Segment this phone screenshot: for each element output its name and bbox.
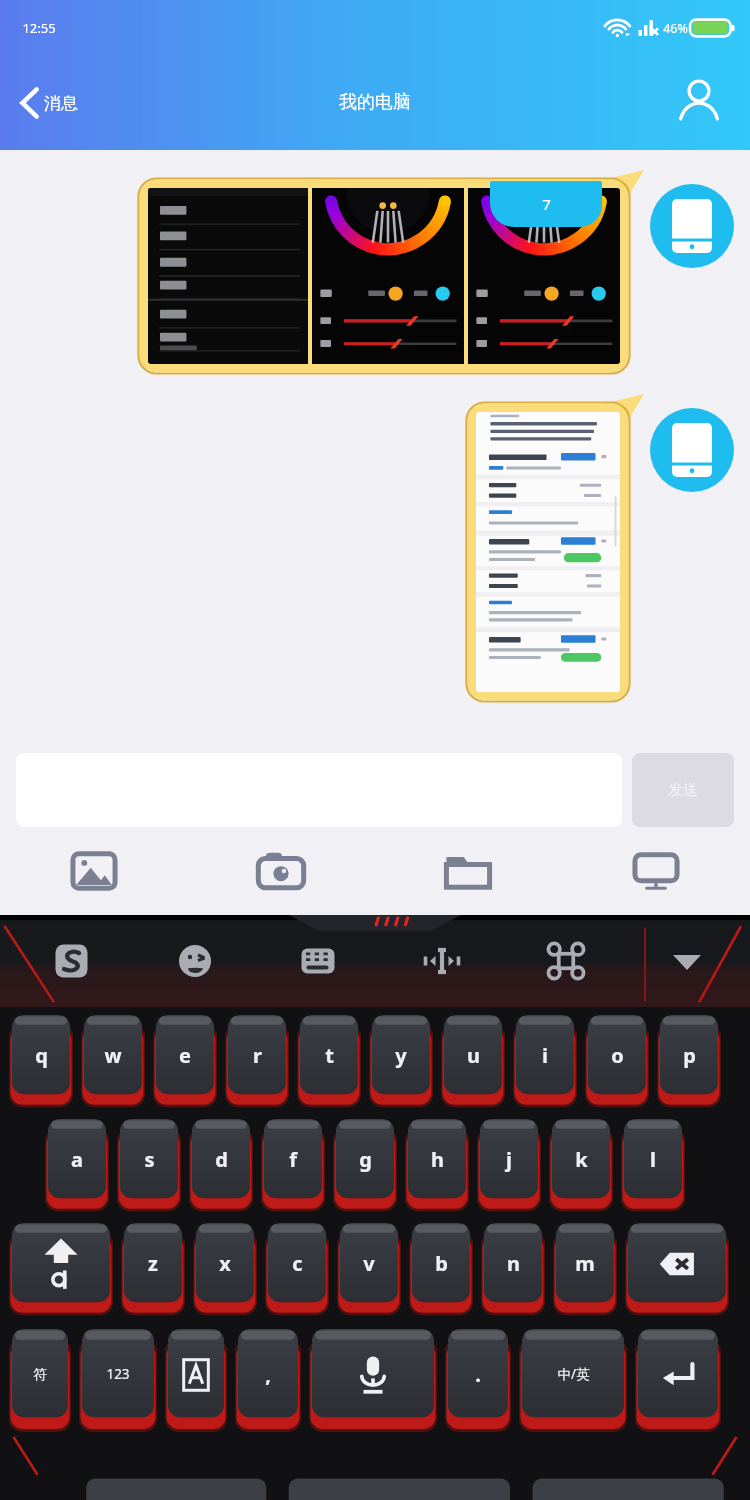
button[interactable]: Device avatar <box>650 408 734 492</box>
button[interactable]: z <box>121 1223 185 1311</box>
staticText: o <box>611 1042 624 1069</box>
button[interactable]: k <box>549 1119 613 1207</box>
button[interactable]: h <box>405 1119 469 1207</box>
button[interactable]: Switch input mode <box>165 1329 227 1427</box>
button[interactable]: l <box>621 1119 685 1207</box>
button[interactable]: 123 <box>79 1329 157 1427</box>
button[interactable] <box>466 402 630 702</box>
staticText: , <box>265 1361 271 1388</box>
button[interactable]: 符 <box>9 1329 71 1427</box>
button[interactable]: i <box>513 1015 577 1103</box>
button[interactable]: Files <box>374 827 562 915</box>
button[interactable]: Backspace <box>625 1223 729 1311</box>
button[interactable]: t <box>297 1015 361 1103</box>
staticText: s <box>144 1146 155 1173</box>
staticText: 我的电脑 <box>339 91 411 114</box>
staticText: m <box>575 1250 595 1277</box>
button[interactable]: Camera <box>187 827 374 915</box>
staticText: h <box>431 1146 444 1173</box>
button[interactable]: Contact profile <box>666 70 732 136</box>
staticText: 123 <box>106 1365 130 1383</box>
staticText: 发送 <box>668 781 698 800</box>
staticText: t <box>325 1042 334 1069</box>
staticText: z <box>148 1250 158 1277</box>
staticText: c <box>292 1250 303 1277</box>
staticText: d <box>215 1146 228 1173</box>
button[interactable]: r <box>225 1015 289 1103</box>
staticText: 46% <box>663 20 688 37</box>
staticText: y <box>395 1042 407 1069</box>
staticText: n <box>507 1250 520 1277</box>
button[interactable]: w <box>81 1015 145 1103</box>
button[interactable]: Emoji <box>133 915 256 1007</box>
button[interactable]: y <box>369 1015 433 1103</box>
button[interactable]: . <box>445 1329 511 1427</box>
button[interactable]: s <box>117 1119 181 1207</box>
button[interactable]: Gallery <box>0 827 187 915</box>
staticText: a <box>71 1146 83 1173</box>
staticText: . <box>475 1361 481 1388</box>
button[interactable]: Remote screen <box>562 827 750 915</box>
staticText: x <box>219 1250 231 1277</box>
button[interactable]: c <box>265 1223 329 1311</box>
button[interactable]: 7 <box>138 178 630 374</box>
staticText: q <box>35 1042 48 1069</box>
staticText: v <box>363 1250 375 1277</box>
button[interactable]: Enter <box>635 1329 721 1427</box>
staticText: 消息 <box>44 93 78 114</box>
button[interactable]: Input method <box>10 915 133 1007</box>
button[interactable]: m <box>553 1223 617 1311</box>
staticText: 12:55 <box>22 19 56 37</box>
staticText: l <box>650 1146 656 1173</box>
button[interactable]: More functions <box>504 915 628 1007</box>
staticText: j <box>506 1146 512 1173</box>
staticText: f <box>289 1146 297 1173</box>
button[interactable]: g <box>333 1119 397 1207</box>
button[interactable]: Hide keyboard <box>628 915 746 1007</box>
staticText: 中/英 <box>557 1365 590 1383</box>
button[interactable]: d <box>189 1119 253 1207</box>
button[interactable]: 消息 <box>12 77 84 129</box>
button[interactable]: , <box>235 1329 301 1427</box>
button[interactable]: 中/英 <box>519 1329 627 1427</box>
button[interactable]: x <box>193 1223 257 1311</box>
staticText: 7 <box>542 194 551 214</box>
button[interactable]: Device avatar <box>650 184 734 268</box>
staticText: p <box>683 1042 696 1069</box>
button[interactable]: Voice input <box>309 1329 437 1427</box>
staticText: e <box>179 1042 191 1069</box>
button[interactable]: v <box>337 1223 401 1311</box>
button[interactable]: 发送 <box>632 753 734 827</box>
staticText: 符 <box>33 1366 47 1383</box>
staticText: w <box>104 1042 122 1069</box>
staticText: b <box>435 1250 448 1277</box>
button[interactable]: p <box>657 1015 721 1103</box>
button[interactable]: a <box>45 1119 109 1207</box>
button[interactable]: n <box>481 1223 545 1311</box>
button[interactable]: Shift <box>9 1223 113 1311</box>
button[interactable]: Move cursor <box>380 915 504 1007</box>
button[interactable]: e <box>153 1015 217 1103</box>
staticText: k <box>575 1146 588 1173</box>
staticText: i <box>542 1042 548 1069</box>
staticText: r <box>253 1042 262 1069</box>
staticText: u <box>467 1042 480 1069</box>
staticText: g <box>359 1146 372 1173</box>
button[interactable]: j <box>477 1119 541 1207</box>
button[interactable]: o <box>585 1015 649 1103</box>
button[interactable]: f <box>261 1119 325 1207</box>
button[interactable]: q <box>9 1015 73 1103</box>
button[interactable]: Keyboard layout <box>256 915 380 1007</box>
button[interactable]: u <box>441 1015 505 1103</box>
button[interactable]: b <box>409 1223 473 1311</box>
